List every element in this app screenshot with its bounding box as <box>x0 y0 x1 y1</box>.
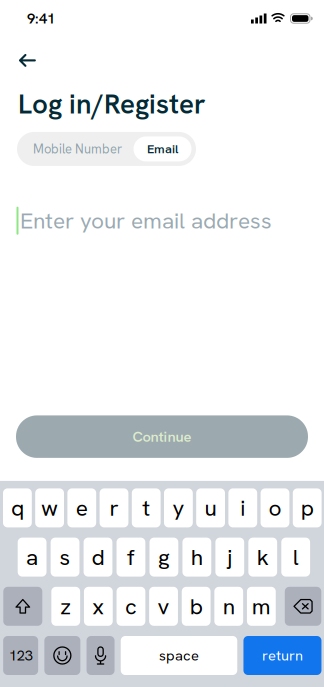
staticText: c <box>125 591 137 621</box>
staticText: t <box>142 493 150 523</box>
staticText: b <box>190 591 203 621</box>
button[interactable]: Shift <box>3 587 42 626</box>
button[interactable]: j <box>215 538 244 577</box>
button[interactable]: space <box>121 636 237 675</box>
staticText: q <box>11 493 24 523</box>
button[interactable]: h <box>182 538 211 577</box>
staticText: return <box>262 646 303 665</box>
staticText: e <box>76 493 88 523</box>
button[interactable]: k <box>248 538 277 577</box>
button[interactable]: a <box>18 538 46 577</box>
staticText: 9:41 <box>27 9 55 28</box>
staticText: w <box>41 493 58 523</box>
staticText: f <box>127 542 135 572</box>
button[interactable]: u <box>196 488 225 527</box>
staticText: g <box>158 542 170 572</box>
staticText: x <box>92 591 104 621</box>
button[interactable]: t <box>132 488 161 527</box>
staticText: d <box>91 542 104 572</box>
button[interactable]: x <box>84 587 113 626</box>
button[interactable]: p <box>293 488 322 527</box>
staticText: i <box>240 493 245 523</box>
button[interactable]: y <box>164 488 193 527</box>
button[interactable]: z <box>51 587 80 626</box>
button[interactable]: g <box>149 538 178 577</box>
button[interactable]: Emoji <box>44 636 80 675</box>
staticText: j <box>227 542 232 572</box>
button[interactable]: Continue <box>16 415 308 458</box>
staticText: p <box>301 493 314 523</box>
button[interactable]: v <box>149 587 178 626</box>
staticText: m <box>252 591 271 621</box>
staticText: Continue <box>132 427 191 446</box>
button[interactable]: r <box>100 488 128 527</box>
staticText: z <box>60 591 71 621</box>
staticText: h <box>191 542 203 572</box>
staticText: s <box>60 542 71 572</box>
staticText: 123 <box>9 646 33 665</box>
button[interactable]: Dictate <box>87 636 115 675</box>
button[interactable]: m <box>247 587 276 626</box>
button[interactable]: n <box>214 587 243 626</box>
button[interactable]: Delete <box>285 587 321 626</box>
button[interactable]: return <box>243 636 321 675</box>
button[interactable]: f <box>117 538 145 577</box>
button[interactable]: q <box>3 488 32 527</box>
button[interactable]: Mobile Number <box>21 136 133 161</box>
button[interactable]: o <box>261 488 289 527</box>
button[interactable]: d <box>84 538 112 577</box>
staticText: o <box>268 493 281 523</box>
staticText: r <box>109 493 118 523</box>
staticText: Enter your email address <box>20 206 272 235</box>
staticText: v <box>158 591 170 621</box>
staticText: Email <box>147 141 178 157</box>
staticText: k <box>257 542 269 572</box>
button[interactable]: l <box>281 538 310 577</box>
staticText: u <box>205 493 217 523</box>
button[interactable]: Email <box>133 136 191 161</box>
staticText: Log in/Register <box>18 86 206 122</box>
button[interactable]: e <box>67 488 96 527</box>
staticText: space <box>159 646 199 665</box>
staticText: y <box>172 493 184 523</box>
staticText: Mobile Number <box>33 140 122 157</box>
staticText: n <box>223 591 235 621</box>
button[interactable]: 123 <box>3 636 38 675</box>
button[interactable]: c <box>116 587 145 626</box>
button[interactable]: i <box>228 488 257 527</box>
button[interactable]: Back <box>0 37 47 70</box>
button[interactable]: b <box>182 587 211 626</box>
staticText: a <box>26 542 38 572</box>
button[interactable]: s <box>51 538 79 577</box>
staticText: l <box>293 542 299 572</box>
button[interactable]: w <box>35 488 64 527</box>
